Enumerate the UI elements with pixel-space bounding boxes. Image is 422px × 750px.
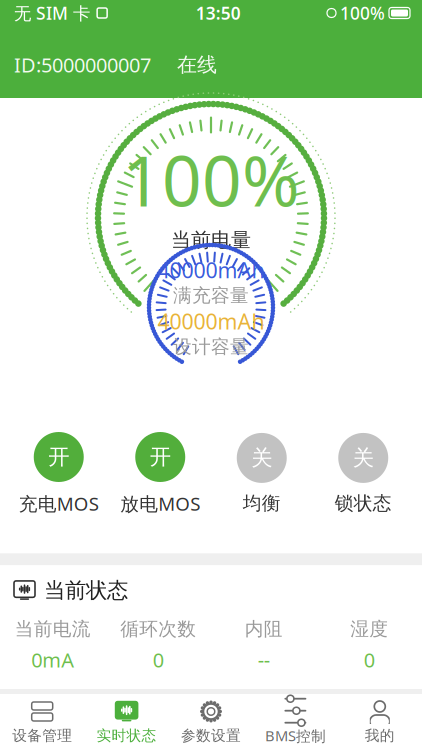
staticText: 40000mAh <box>157 307 264 335</box>
button[interactable]: 我的 <box>338 693 422 750</box>
staticText: 设计容量 <box>173 335 249 358</box>
button[interactable]: 实时状态 <box>84 693 169 750</box>
staticText: 100% <box>340 1 385 24</box>
staticText: -- <box>258 646 270 673</box>
button[interactable]: 设备管理 <box>0 693 84 750</box>
staticText: 无 SIM 卡 <box>14 1 90 24</box>
staticText: 内阻 <box>245 617 283 640</box>
button[interactable]: 参数设置 <box>169 693 253 750</box>
button[interactable]: 关 <box>211 433 312 515</box>
staticText: 开 <box>150 444 171 470</box>
staticText: 40000mAh <box>157 256 264 284</box>
staticText: 100% <box>122 134 300 226</box>
staticText: 充电MOS <box>19 491 99 516</box>
staticText: 我的 <box>365 726 395 744</box>
staticText: 实时状态 <box>97 726 157 744</box>
button[interactable]: 关 <box>312 433 414 515</box>
staticText: 放电MOS <box>120 491 200 516</box>
staticText: 0mA <box>31 646 74 673</box>
staticText: 锁状态 <box>335 492 392 515</box>
staticText: 当前状态 <box>44 577 128 603</box>
staticText: 关 <box>353 445 374 471</box>
staticText: 均衡 <box>243 492 281 515</box>
staticText: 0 <box>153 646 164 673</box>
staticText: 满充容量 <box>173 284 249 307</box>
staticText: BMS控制 <box>265 726 326 745</box>
staticText: 循环次数 <box>120 617 196 640</box>
staticText: 关 <box>251 445 272 471</box>
button[interactable]: 开 <box>8 432 109 516</box>
staticText: 开 <box>48 444 69 470</box>
button[interactable]: BMS控制 <box>253 693 338 750</box>
staticText: 当前电流 <box>15 617 91 640</box>
staticText: 当前电量 <box>171 228 251 252</box>
staticText: 0 <box>364 646 375 673</box>
staticText: 13:50 <box>196 1 241 24</box>
staticText: 参数设置 <box>181 726 241 744</box>
staticText: ID:5000000007 <box>14 51 151 78</box>
staticText: 在线 <box>177 52 217 77</box>
staticText: 湿度 <box>350 617 388 640</box>
button[interactable]: 开 <box>109 432 211 516</box>
staticText: 设备管理 <box>12 726 72 744</box>
